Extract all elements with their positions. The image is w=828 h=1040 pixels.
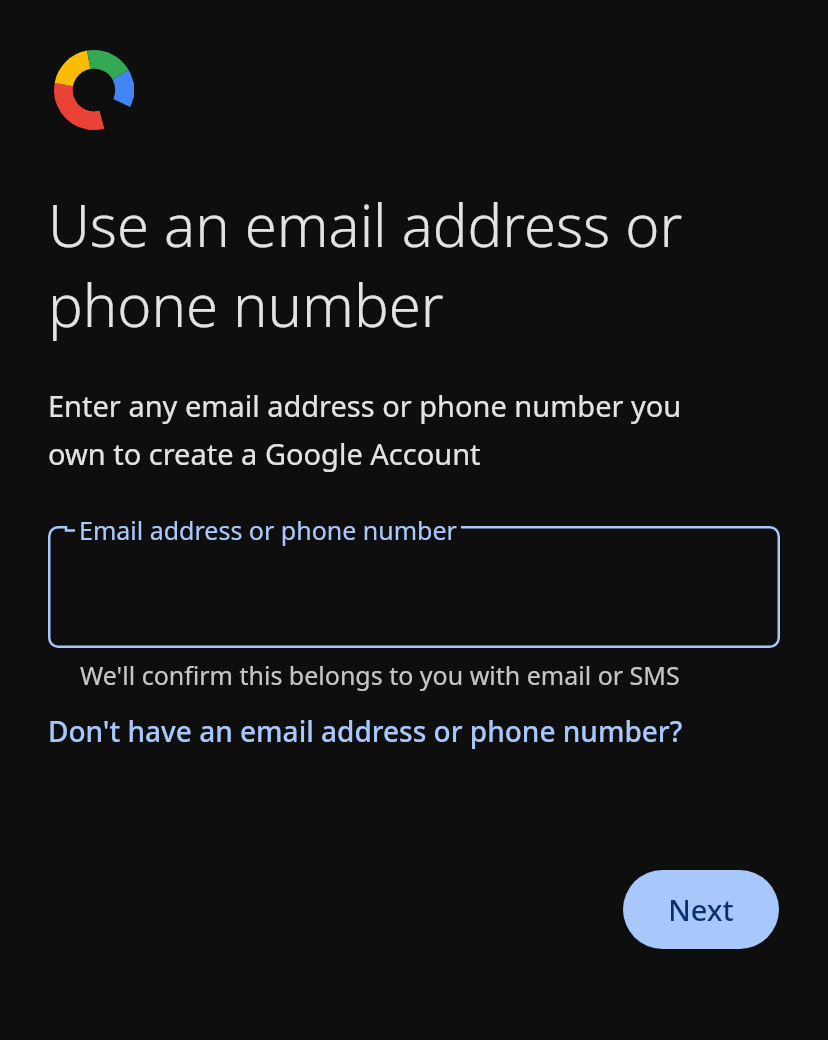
staticText: Enter any email address or phone number … [48,386,728,473]
staticText: Don't have an email address or phone num… [48,712,683,750]
staticText: Email address or phone number [79,513,457,547]
button[interactable]: Email address or phone number [48,526,780,648]
button[interactable]: Next [623,870,779,949]
staticText: Next [668,890,734,929]
staticText: We'll confirm this belongs to you with e… [80,658,680,692]
other: Google [53,50,135,130]
staticText: Use an email address or phone number [48,185,738,344]
button[interactable]: Don't have an email address or phone num… [48,712,683,750]
